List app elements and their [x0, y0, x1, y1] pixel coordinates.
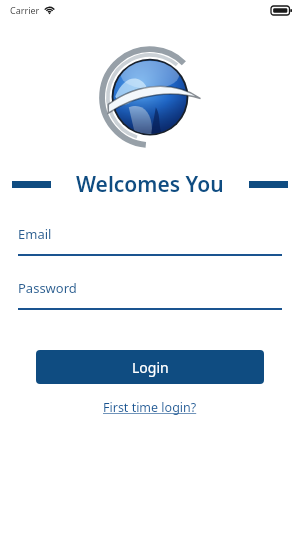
staticText: Login	[132, 358, 169, 377]
staticText: First time login?	[103, 399, 197, 416]
button[interactable]: Password	[18, 279, 282, 310]
button[interactable]: Email	[18, 225, 282, 256]
staticText: Email	[18, 225, 52, 243]
button[interactable]: Login	[36, 350, 264, 384]
other: Wi-Fi signal	[44, 6, 55, 14]
staticText: Welcomes You	[76, 170, 224, 199]
staticText: Password	[18, 279, 77, 297]
button[interactable]: First time login?	[97, 396, 203, 419]
staticText: Carrier	[10, 4, 40, 16]
other: Battery	[271, 6, 292, 15]
